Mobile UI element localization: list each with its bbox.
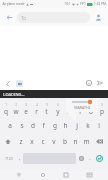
button[interactable]: , xyxy=(16,150,23,167)
staticText: 6 xyxy=(57,103,59,107)
staticText: h xyxy=(63,121,68,130)
staticText: w xyxy=(13,107,19,116)
button[interactable]: c xyxy=(37,133,48,150)
staticText: z xyxy=(19,137,23,146)
staticText: l xyxy=(98,121,100,130)
button[interactable]: 0 xyxy=(96,101,107,117)
button[interactable]: z xyxy=(15,133,26,150)
staticText: 8 xyxy=(79,103,81,107)
button[interactable]: Keyboard xyxy=(84,170,95,180)
button[interactable]: Enter xyxy=(93,150,106,167)
button[interactable]: 4 xyxy=(31,101,41,117)
button[interactable]: Shift xyxy=(1,133,15,150)
button[interactable]: 2 xyxy=(11,101,21,117)
button[interactable]: 8 xyxy=(74,101,85,117)
staticText: , xyxy=(19,155,21,162)
staticText: j xyxy=(76,121,78,130)
button[interactable]: g xyxy=(49,117,60,133)
staticText: q xyxy=(4,107,8,116)
button[interactable]: Backspace xyxy=(92,133,107,150)
staticText: b xyxy=(63,137,67,146)
staticText: n xyxy=(73,137,78,146)
button[interactable]: Emoji xyxy=(84,78,94,88)
staticText: e xyxy=(24,107,28,116)
staticText: o xyxy=(89,107,93,116)
button[interactable]: 9 xyxy=(85,101,96,117)
button[interactable]: 1 xyxy=(1,101,11,117)
button[interactable]: m xyxy=(81,133,92,150)
staticText: r xyxy=(35,107,38,116)
staticText: 4 xyxy=(36,103,38,107)
staticText: i xyxy=(79,107,81,116)
staticText: d xyxy=(31,121,35,130)
staticText: u xyxy=(66,107,71,116)
button[interactable]: f xyxy=(38,117,49,133)
staticText: FP1 xyxy=(80,2,86,6)
button[interactable]: v xyxy=(48,133,59,150)
staticText: m xyxy=(83,137,90,146)
staticText: s xyxy=(20,121,24,130)
button[interactable]: x xyxy=(26,133,37,150)
button[interactable]: 6 xyxy=(52,101,63,117)
button[interactable]: Home xyxy=(37,170,48,180)
staticText: v xyxy=(52,137,56,146)
staticText: MARATHI xyxy=(74,105,90,110)
button[interactable]: MARATHI xyxy=(66,98,98,112)
button[interactable]: ?123 xyxy=(2,150,16,167)
staticText: k xyxy=(86,121,90,130)
button[interactable]: d xyxy=(27,117,38,133)
staticText: ?123 xyxy=(5,156,13,161)
button[interactable]: Add contact xyxy=(93,12,104,23)
button[interactable]: 3 xyxy=(21,101,31,117)
staticText: 5 xyxy=(46,103,48,107)
staticText: To xyxy=(21,15,26,21)
staticText: 3 xyxy=(25,103,27,107)
staticText: a xyxy=(8,121,12,130)
staticText: Airplane mode xyxy=(2,2,25,6)
button[interactable]: Settings xyxy=(76,150,86,167)
staticText: y xyxy=(56,107,60,116)
staticText: p xyxy=(100,107,104,116)
staticText: g xyxy=(53,121,57,130)
button[interactable]: h xyxy=(60,117,71,133)
button[interactable]: Back xyxy=(13,170,24,180)
button[interactable]: Recents xyxy=(60,170,71,180)
staticText: x xyxy=(30,137,34,146)
staticText: . xyxy=(89,155,91,162)
staticText: LOADING... xyxy=(3,92,25,97)
button[interactable]: 5 xyxy=(41,101,52,117)
staticText: t xyxy=(45,107,48,116)
button[interactable]: j xyxy=(71,117,82,133)
staticText: f xyxy=(42,121,45,130)
button[interactable]: k xyxy=(82,117,93,133)
button[interactable]: Back xyxy=(4,12,15,23)
staticText: c xyxy=(41,137,45,146)
button[interactable]: n xyxy=(70,133,81,150)
button[interactable]: To xyxy=(17,12,90,23)
button[interactable]: s xyxy=(16,117,27,133)
button[interactable]: 7 xyxy=(63,101,74,117)
button[interactable]: Send xyxy=(95,78,105,88)
staticText: 2 xyxy=(15,103,17,107)
staticText: 1:32 PM xyxy=(94,2,106,6)
button[interactable]: l xyxy=(93,117,104,133)
button[interactable]: Attach xyxy=(3,78,13,88)
staticText: 9 xyxy=(90,103,92,107)
button[interactable]: a xyxy=(4,117,16,133)
staticText: 10:1 xyxy=(64,2,71,6)
button[interactable]: b xyxy=(59,133,70,150)
staticText: 1 xyxy=(5,103,7,107)
button[interactable]: Camera xyxy=(14,78,24,88)
staticText: 0 xyxy=(101,103,103,107)
